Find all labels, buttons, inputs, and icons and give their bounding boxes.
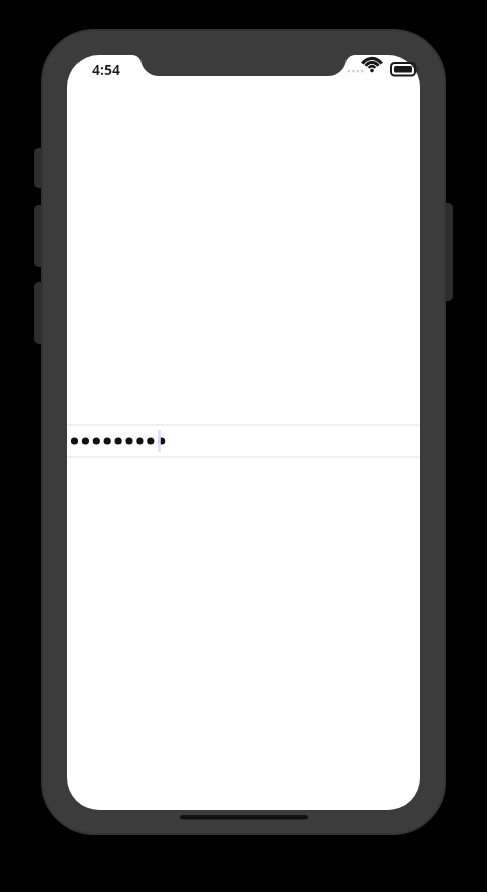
staticText: 4:54 bbox=[92, 60, 120, 79]
button[interactable]: Password field bbox=[67, 425, 420, 457]
